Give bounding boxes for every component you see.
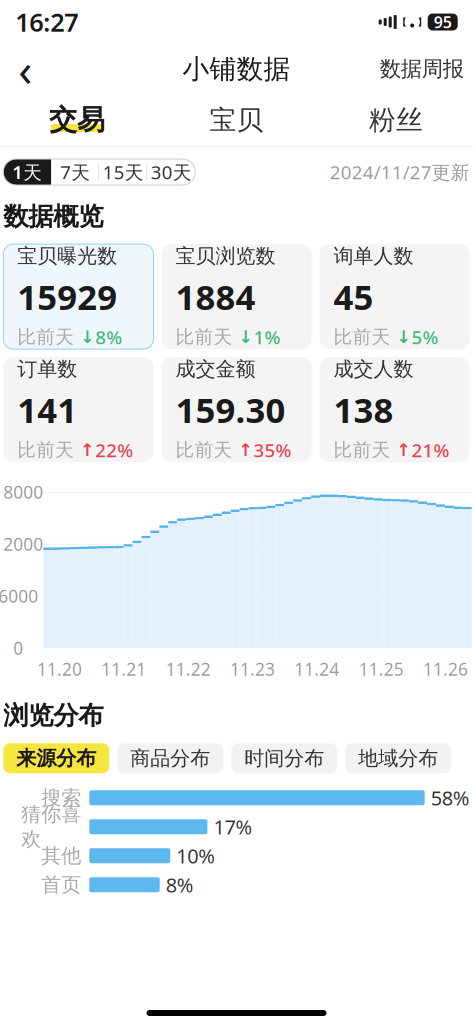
button[interactable]: 数据周报 — [374, 47, 470, 91]
button[interactable]: 宝贝浏览数 — [161, 244, 311, 349]
button[interactable]: 时间分布 — [231, 743, 337, 773]
staticText: 30天 — [151, 160, 192, 184]
staticText: 11.20 — [37, 658, 82, 681]
staticText: 粉丝 — [369, 104, 423, 136]
button[interactable]: 7天 — [51, 159, 99, 185]
staticText: 11.25 — [359, 658, 404, 681]
button[interactable]: 地域分布 — [345, 743, 451, 773]
staticText: 45 — [334, 273, 374, 319]
staticText: 6000 — [0, 585, 38, 608]
staticText: ‹ — [18, 39, 32, 99]
staticText: ↓ — [80, 327, 95, 347]
staticText: 比前天 — [17, 438, 80, 461]
button[interactable]: 订单数 — [3, 357, 153, 462]
staticText: 1% — [253, 324, 280, 349]
button[interactable]: 1天 — [3, 159, 51, 185]
staticText: 10% — [176, 842, 215, 869]
staticText: 搜索 — [41, 785, 81, 810]
staticText: 比前天 — [334, 438, 397, 461]
staticText: 8% — [166, 871, 194, 898]
staticText: 21% — [412, 437, 450, 462]
staticText: 成交金额 — [175, 357, 255, 381]
staticText: 商品分布 — [130, 746, 210, 770]
staticText: 11.21 — [101, 658, 146, 681]
staticText: 小铺数据 — [182, 53, 290, 85]
staticText: 12000 — [0, 533, 43, 556]
button[interactable]: 30天 — [147, 159, 195, 185]
staticText: 成交人数 — [334, 357, 414, 381]
button[interactable]: 商品分布 — [117, 743, 223, 773]
staticText: 比前天 — [175, 438, 238, 461]
staticText: 来源分布 — [16, 746, 96, 770]
staticText: 22% — [95, 437, 133, 462]
staticText: 8% — [95, 324, 122, 349]
staticText: 数据概览 — [3, 201, 103, 232]
staticText: 比前天 — [175, 325, 238, 348]
staticText: 数据周报 — [380, 56, 464, 82]
staticText: ↓ — [238, 327, 253, 347]
staticText: 1884 — [175, 273, 255, 319]
staticText: 地域分布 — [358, 746, 438, 770]
staticText: 35% — [253, 437, 291, 462]
staticText: 浏览分布 — [3, 700, 103, 731]
staticText: 58% — [431, 784, 470, 811]
staticText: 1天 — [12, 160, 42, 184]
staticText: 15929 — [17, 273, 117, 319]
staticText: 159.30 — [175, 386, 285, 432]
staticText: 11.26 — [423, 658, 468, 681]
staticText: 138 — [334, 386, 394, 432]
button[interactable]: 来源分布 — [3, 743, 109, 773]
button[interactable]: 宝贝曝光数 — [3, 244, 153, 349]
staticText: 11.23 — [230, 658, 275, 681]
staticText: 比前天 — [334, 325, 397, 348]
staticText: 95 — [434, 11, 452, 33]
staticText: ↑ — [397, 440, 412, 460]
staticText: 5% — [412, 324, 439, 349]
staticText: 15天 — [103, 160, 144, 184]
staticText: 宝贝 — [209, 104, 263, 136]
staticText: 猜你喜欢 — [21, 802, 81, 851]
staticText: 交易 — [49, 103, 105, 137]
button[interactable]: 成交人数 — [320, 357, 470, 462]
staticText: 宝贝浏览数 — [175, 244, 275, 268]
staticText: 宝贝曝光数 — [17, 244, 117, 268]
staticText: 首页 — [41, 872, 81, 897]
staticText: 其他 — [41, 843, 81, 868]
staticText: 11.24 — [294, 658, 339, 681]
staticText: 11.22 — [166, 658, 211, 681]
staticText: ↑ — [238, 440, 253, 460]
button[interactable]: 交易 — [0, 94, 157, 146]
button[interactable]: 宝贝 — [157, 94, 316, 146]
staticText: 7天 — [60, 160, 90, 184]
staticText: ↑ — [80, 440, 95, 460]
staticText: 141 — [17, 386, 77, 432]
staticText: 订单数 — [17, 357, 77, 381]
staticText: 时间分布 — [244, 746, 324, 770]
button[interactable]: 15天 — [99, 159, 147, 185]
button[interactable]: 成交金额 — [161, 357, 311, 462]
button[interactable]: 询单人数 — [320, 244, 470, 349]
staticText: 比前天 — [17, 325, 80, 348]
staticText: 18000 — [0, 481, 43, 504]
staticText: ↓ — [397, 327, 412, 347]
staticText: 17% — [213, 813, 252, 840]
staticText: 0 — [13, 637, 23, 660]
staticText: 询单人数 — [334, 244, 414, 268]
button[interactable]: 粉丝 — [316, 94, 473, 146]
button[interactable]: Back — [3, 47, 47, 91]
staticText: 16:27 — [15, 5, 78, 39]
staticText: 2024/11/27更新 — [330, 160, 470, 184]
